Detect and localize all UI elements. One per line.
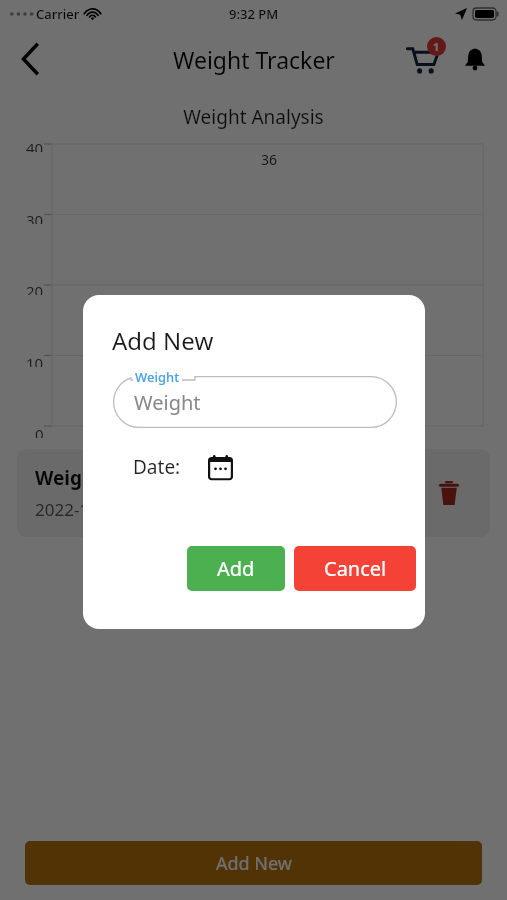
- staticText: 9:32 PM: [229, 5, 279, 23]
- button[interactable]: Cancel: [294, 546, 416, 591]
- staticText: 40: [26, 138, 44, 152]
- staticText: Cancel: [324, 555, 387, 582]
- staticText: 20: [26, 281, 44, 295]
- button[interactable]: Add New: [25, 841, 482, 885]
- button[interactable]: Add: [187, 546, 285, 591]
- button[interactable]: Delete: [426, 470, 472, 516]
- staticText: Carrier: [36, 5, 80, 23]
- staticText: Weight Analysis: [0, 104, 507, 130]
- staticText: 30: [26, 210, 44, 224]
- button[interactable]: Pick date: [203, 450, 237, 484]
- staticText: 10: [26, 353, 44, 367]
- button[interactable]: Notifications: [453, 37, 497, 81]
- staticText: Weight: [134, 389, 201, 416]
- staticText: 0: [35, 424, 44, 438]
- staticText: 1: [433, 39, 440, 54]
- staticText: Add: [217, 555, 255, 582]
- button[interactable]: Weight: 36: [17, 449, 490, 537]
- staticText: Weight Tracker: [173, 44, 335, 75]
- staticText: 36: [261, 150, 278, 169]
- staticText: Weight: [135, 368, 180, 386]
- staticText: Date:: [133, 454, 181, 480]
- button[interactable]: Cart: [399, 35, 447, 83]
- staticText: Add New: [216, 851, 292, 876]
- staticText: 2022-11-04: [35, 498, 124, 521]
- staticText: Add New: [112, 324, 214, 357]
- staticText: Weight: 36: [35, 465, 135, 491]
- button[interactable]: Back: [8, 36, 54, 82]
